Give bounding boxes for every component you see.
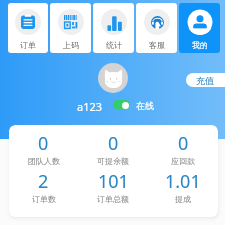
staticText: 团队人数 <box>28 156 60 166</box>
button[interactable]: 0 <box>9 131 78 168</box>
staticText: 0 <box>38 131 49 154</box>
staticText: 我的 <box>192 40 208 50</box>
staticText: 应回款 <box>171 156 195 166</box>
button[interactable]: Avatar <box>98 63 128 93</box>
button[interactable]: 订单 <box>8 3 48 53</box>
staticText: 充值 <box>196 75 214 86</box>
other: Profile <box>187 9 213 35</box>
button[interactable]: 1.01 <box>148 169 218 206</box>
staticText: 统计 <box>106 40 122 50</box>
button[interactable]: 上码 <box>50 3 91 53</box>
button[interactable]: Online toggle <box>113 100 130 110</box>
staticText: 客服 <box>149 40 165 50</box>
button[interactable]: 2 <box>9 169 78 206</box>
staticText: 订单数 <box>32 194 56 204</box>
button[interactable]: 0 <box>148 131 218 168</box>
staticText: 上码 <box>63 40 79 50</box>
button[interactable]: 统计 <box>93 3 134 53</box>
button[interactable]: 0 <box>78 131 148 168</box>
staticText: 在线 <box>136 100 154 111</box>
staticText: 1.01 <box>165 169 201 192</box>
staticText: 可提余额 <box>97 156 129 166</box>
button[interactable]: 101 <box>78 169 148 206</box>
staticText: 提成 <box>175 194 191 204</box>
button[interactable]: Profile <box>179 3 220 53</box>
staticText: 2 <box>38 169 49 192</box>
staticText: a123 <box>77 99 103 111</box>
staticText: 订单 <box>20 40 36 50</box>
button[interactable]: 充值 <box>186 73 225 87</box>
staticText: 0 <box>178 131 189 154</box>
staticText: 订单总额 <box>97 194 129 204</box>
button[interactable]: 客服 <box>136 3 177 53</box>
staticText: 0 <box>108 131 119 154</box>
staticText: 101 <box>98 169 129 192</box>
